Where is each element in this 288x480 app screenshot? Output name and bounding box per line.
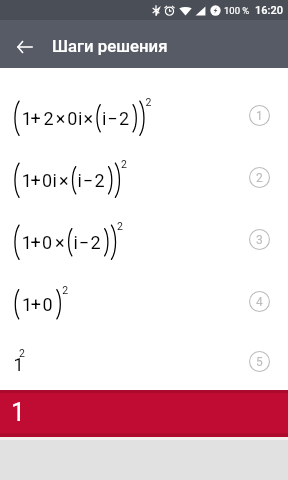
button[interactable]: 3 [0, 208, 288, 270]
staticText: 4 [256, 295, 263, 309]
staticText: 3 [256, 233, 263, 247]
staticText: Шаги решения [52, 36, 168, 56]
staticText: 16:20 [255, 4, 283, 17]
button[interactable]: 2 [0, 146, 288, 208]
staticText: 2 [256, 171, 263, 185]
staticText: 5 [256, 355, 263, 369]
button[interactable]: Back [4, 27, 44, 67]
button[interactable]: 5 [0, 332, 288, 390]
staticText: 100 % [224, 5, 250, 16]
button[interactable]: 4 [0, 270, 288, 332]
staticText: 1 [11, 398, 26, 427]
button[interactable]: 1 [0, 84, 288, 146]
button[interactable]: 1 [0, 390, 288, 437]
staticText: 1 [256, 109, 263, 123]
